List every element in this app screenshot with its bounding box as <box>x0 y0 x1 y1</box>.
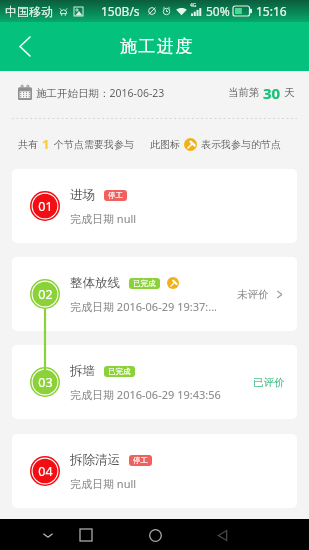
staticText: 1 <box>42 135 50 153</box>
staticText: 已完成 <box>108 367 131 376</box>
staticText: 拆除清运 <box>70 452 120 468</box>
staticText: 施工进度 <box>120 36 194 57</box>
staticText: 停工 <box>108 191 123 200</box>
staticText: 表示我参与的节点 <box>201 138 281 151</box>
staticText: 完成日期 null <box>70 211 137 226</box>
staticText: 02 <box>38 286 53 303</box>
button[interactable]: Back <box>210 523 234 547</box>
button[interactable]: 01 <box>12 169 297 243</box>
button[interactable]: 02 <box>12 257 297 331</box>
staticText: 已完成 <box>133 279 156 288</box>
staticText: 已评价 <box>253 376 285 389</box>
staticText: 拆墙 <box>70 363 95 379</box>
staticText: 15:16 <box>256 3 287 19</box>
staticText: 完成日期 2016-06-29 19:43:56 <box>70 387 221 402</box>
staticText: 30 <box>263 83 281 103</box>
staticText: 中国移动 <box>5 4 53 19</box>
staticText: 50% <box>206 3 230 19</box>
staticText: 共有 <box>18 138 38 151</box>
button[interactable]: Recents <box>74 523 98 547</box>
button[interactable]: Back <box>5 22 45 71</box>
staticText: 施工开始日期：2016-06-23 <box>36 86 165 100</box>
staticText: 未评价 <box>237 288 269 301</box>
staticText: 150B/s <box>101 3 140 19</box>
staticText: 停工 <box>133 456 148 465</box>
staticText: 整体放线 <box>70 275 120 291</box>
staticText: 01 <box>38 198 53 215</box>
staticText: 此图标 <box>150 138 180 151</box>
staticText: 个节点需要我参与 <box>54 138 134 151</box>
staticText: 4G <box>190 2 197 9</box>
staticText: 完成日期 null <box>70 476 137 491</box>
staticText: 04 <box>38 463 53 480</box>
button[interactable]: Hide keyboard <box>36 523 60 547</box>
staticText: 当前第 <box>228 86 260 99</box>
button[interactable]: 04 <box>12 434 297 508</box>
button[interactable]: 03 <box>12 345 297 419</box>
staticText: 完成日期 2016-06-29 19:37:... <box>70 299 218 314</box>
staticText: 天 <box>284 86 295 99</box>
button[interactable]: Home <box>143 523 167 547</box>
staticText: 进场 <box>70 187 95 203</box>
staticText: 03 <box>38 374 53 391</box>
